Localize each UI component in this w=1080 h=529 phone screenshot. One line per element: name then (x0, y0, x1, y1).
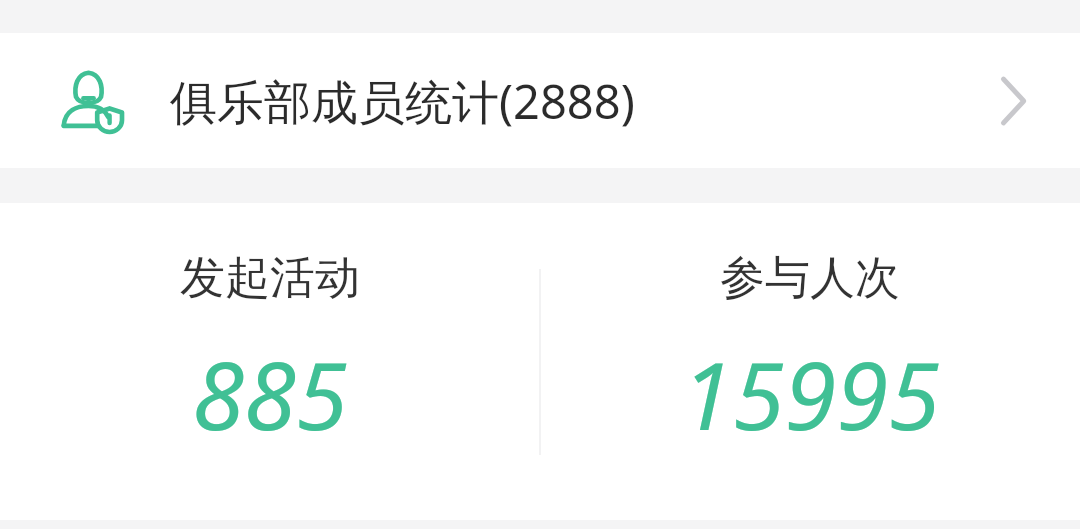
staticText: 参与人次 (720, 250, 900, 307)
button[interactable]: 参与人次 (540, 203, 1080, 520)
other: 查看俱乐部成员统计 (986, 74, 1040, 128)
staticText: 15995 (681, 330, 940, 458)
staticText: 俱乐部成员统计(2888) (170, 69, 974, 133)
staticText: 发起活动 (180, 250, 360, 307)
button[interactable]: 俱乐部成员统计(2888) (0, 33, 1080, 168)
staticText: 885 (192, 330, 348, 458)
button[interactable]: 发起活动 (0, 203, 540, 520)
